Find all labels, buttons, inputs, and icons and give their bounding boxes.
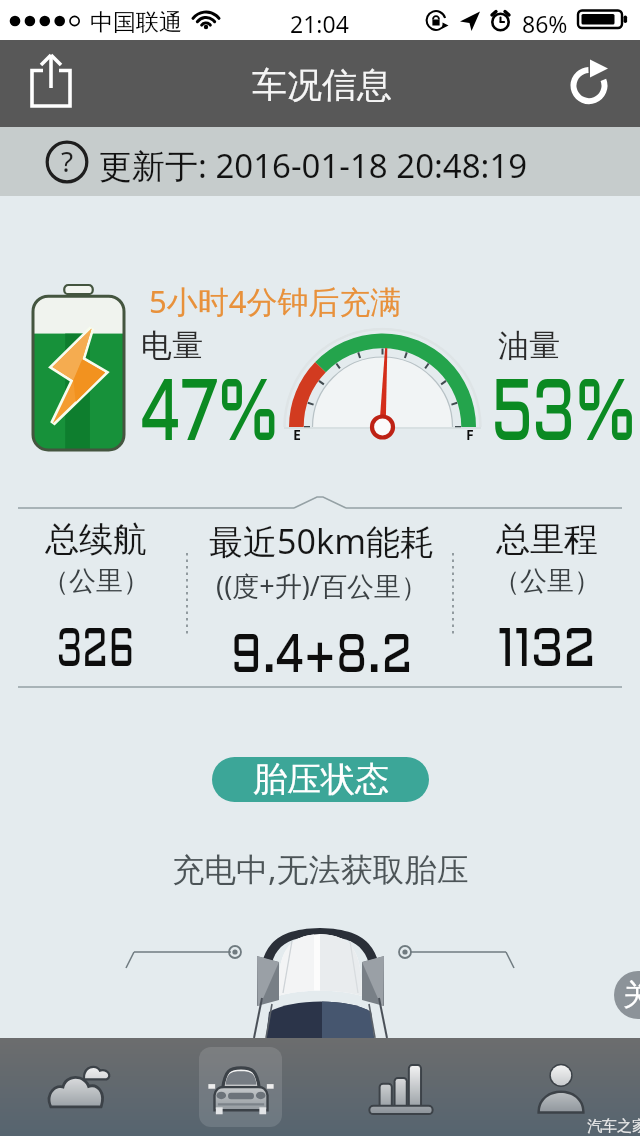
button[interactable]: 总里程 (407, 518, 640, 630)
staticText: （公里） (493, 564, 601, 598)
staticText: 总续航 (45, 518, 147, 561)
staticText: （公里） (42, 564, 150, 598)
staticText: 电量 (141, 326, 203, 365)
staticText: 47% (141, 377, 279, 459)
staticText: 总里程 (496, 518, 598, 561)
staticText: 5小时4分钟后充满 (149, 280, 402, 322)
button[interactable]: Refresh (555, 48, 625, 118)
staticText: 326 (57, 628, 135, 678)
staticText: 关 (623, 976, 640, 1014)
staticText: E (293, 425, 301, 444)
button[interactable]: Close (614, 971, 640, 1019)
staticText: ((度+升)/百公里） (216, 567, 428, 604)
staticText: 汽车之家 (587, 1117, 640, 1136)
button[interactable]: Car (160, 1038, 320, 1136)
button[interactable]: 最近50km能耗 (181, 518, 461, 636)
staticText: F (466, 425, 474, 444)
staticText: 86% (522, 8, 568, 39)
button[interactable]: Statistics (320, 1038, 480, 1136)
button[interactable]: 总续航 (0, 518, 236, 630)
button[interactable]: 胎压状态 (212, 757, 429, 802)
button[interactable]: Weather (0, 1038, 160, 1136)
staticText: 9.4+8.2 (230, 634, 413, 684)
staticText: 53% (492, 377, 637, 459)
button[interactable]: Share (12, 45, 90, 123)
staticText: 21:04 (290, 8, 349, 39)
staticText: 最近50km能耗 (209, 518, 434, 564)
staticText: 中国联通 (90, 8, 182, 37)
staticText: 胎压状态 (253, 758, 389, 801)
staticText: 车况信息 (252, 63, 392, 107)
staticText: 油量 (498, 326, 560, 365)
staticText: 1132 (498, 628, 596, 678)
staticText: ? (61, 142, 74, 180)
staticText: 更新于: 2016-01-18 20:48:19 (99, 143, 528, 188)
staticText: 充电中,无法获取胎压 (172, 847, 469, 891)
button[interactable]: ? (0, 127, 640, 196)
button[interactable]: Profile (480, 1038, 640, 1136)
